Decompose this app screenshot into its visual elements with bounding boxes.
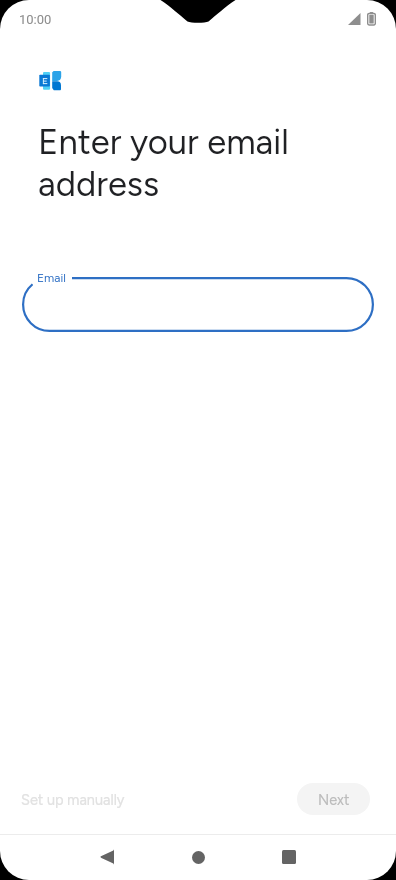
button[interactable]: Next bbox=[297, 783, 370, 815]
button[interactable]: Home bbox=[174, 834, 222, 880]
staticText: Set up manually bbox=[21, 791, 125, 808]
staticText: Next bbox=[318, 791, 350, 808]
button[interactable]: Back bbox=[83, 834, 131, 880]
button[interactable]: Set up manually bbox=[8, 783, 138, 816]
button[interactable]: Recent apps bbox=[265, 834, 313, 880]
staticText: Email bbox=[37, 271, 66, 285]
staticText: Enter your email address bbox=[38, 121, 289, 205]
staticText: 10:00 bbox=[19, 12, 52, 27]
button[interactable]: Email bbox=[22, 277, 374, 332]
